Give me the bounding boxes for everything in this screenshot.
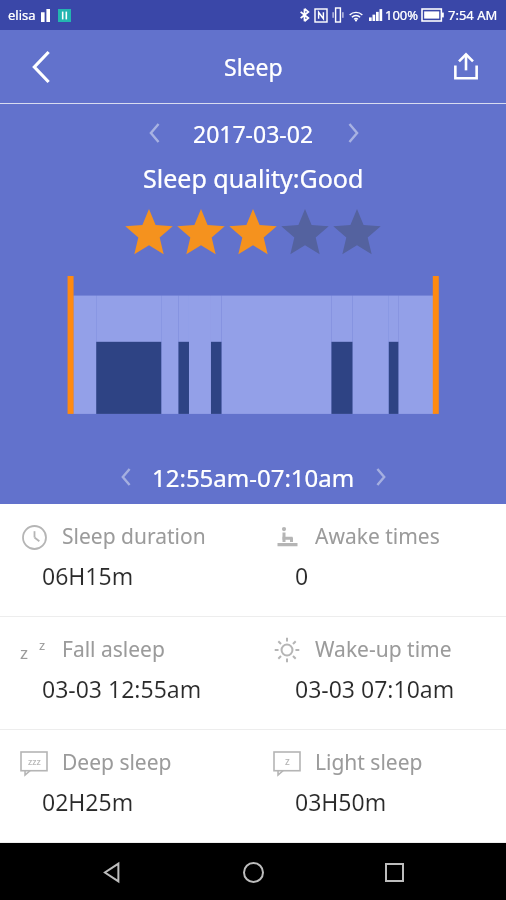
staticText: zzz [28, 755, 41, 767]
staticText: 7:54 AM [448, 6, 498, 24]
staticText: 03H50m [295, 786, 387, 817]
staticText: 0 [295, 560, 309, 591]
button[interactable]: Next day [336, 116, 370, 150]
staticText: z [285, 754, 290, 768]
button[interactable]: Back [90, 850, 134, 894]
staticText: 03-03 12:55am [42, 673, 202, 704]
button[interactable]: Recents [372, 850, 416, 894]
staticText: Fall asleep [62, 635, 165, 664]
button[interactable]: Back [18, 44, 64, 90]
staticText: 03-03 07:10am [295, 673, 455, 704]
button[interactable]: Previous day [137, 116, 171, 150]
staticText: Light sleep [315, 748, 423, 777]
button[interactable]: Home [231, 850, 275, 894]
button[interactable]: Sleep duration [0, 504, 253, 616]
staticText: Wake-up time [315, 635, 452, 664]
staticText: Awake times [315, 522, 440, 551]
button[interactable]: Wake-up time [253, 617, 506, 729]
staticText: Sleep duration [62, 522, 206, 551]
button[interactable]: z [253, 730, 506, 842]
button[interactable]: Previous range [110, 461, 142, 493]
staticText: Sleep [224, 51, 283, 82]
staticText: 06H15m [42, 560, 134, 591]
staticText: Sleep quality:Good [143, 161, 364, 195]
button[interactable]: Next range [365, 461, 397, 493]
button[interactable]: zzz [0, 730, 253, 842]
staticText: elisa [8, 6, 36, 24]
staticText: z [20, 641, 28, 664]
staticText: z [39, 636, 46, 654]
staticText: 100% [385, 6, 419, 24]
button[interactable]: z [0, 617, 253, 729]
staticText: 02H25m [42, 786, 134, 817]
button[interactable]: Awake times [253, 504, 506, 616]
button[interactable]: Share [442, 43, 490, 91]
staticText: 12:55am-07:10am [152, 461, 355, 494]
staticText: Deep sleep [62, 748, 172, 777]
staticText: 2017-03-02 [193, 118, 314, 149]
